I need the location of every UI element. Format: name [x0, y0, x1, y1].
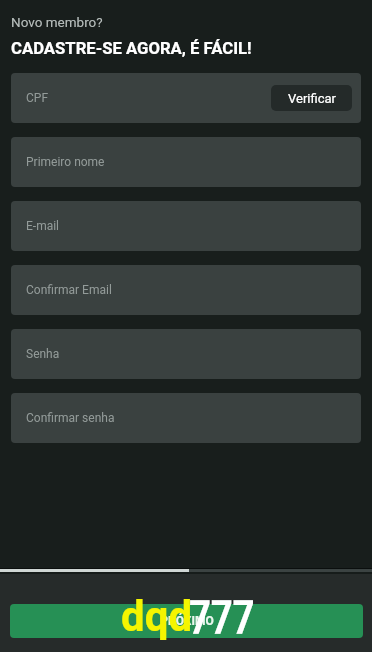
staticText: CADASTRE-SE AGORA, É FÁCIL!: [11, 39, 252, 59]
other: Progresso do cadastro: [0, 569, 372, 572]
button[interactable]: E-mail: [11, 201, 361, 251]
staticText: Confirmar Email: [26, 283, 112, 297]
staticText: Verificar: [288, 91, 336, 106]
button[interactable]: Primeiro nome: [11, 137, 361, 187]
button[interactable]: Confirmar senha: [11, 393, 361, 443]
button[interactable]: CPF: [11, 73, 361, 123]
staticText: dqd: [121, 592, 193, 641]
staticText: CPF: [26, 91, 49, 105]
staticText: E-mail: [26, 219, 60, 233]
staticText: Novo membro?: [11, 14, 103, 30]
button[interactable]: Senha: [11, 329, 361, 379]
staticText: Confirmar senha: [26, 411, 115, 425]
staticText: 777: [189, 592, 255, 644]
button[interactable]: Verificar: [271, 85, 352, 111]
staticText: Senha: [26, 347, 60, 361]
staticText: Primeiro nome: [26, 155, 105, 169]
button[interactable]: PRÓXIMO: [10, 604, 363, 638]
staticText: PRÓXIMO: [160, 614, 214, 628]
button[interactable]: Confirmar Email: [11, 265, 361, 315]
